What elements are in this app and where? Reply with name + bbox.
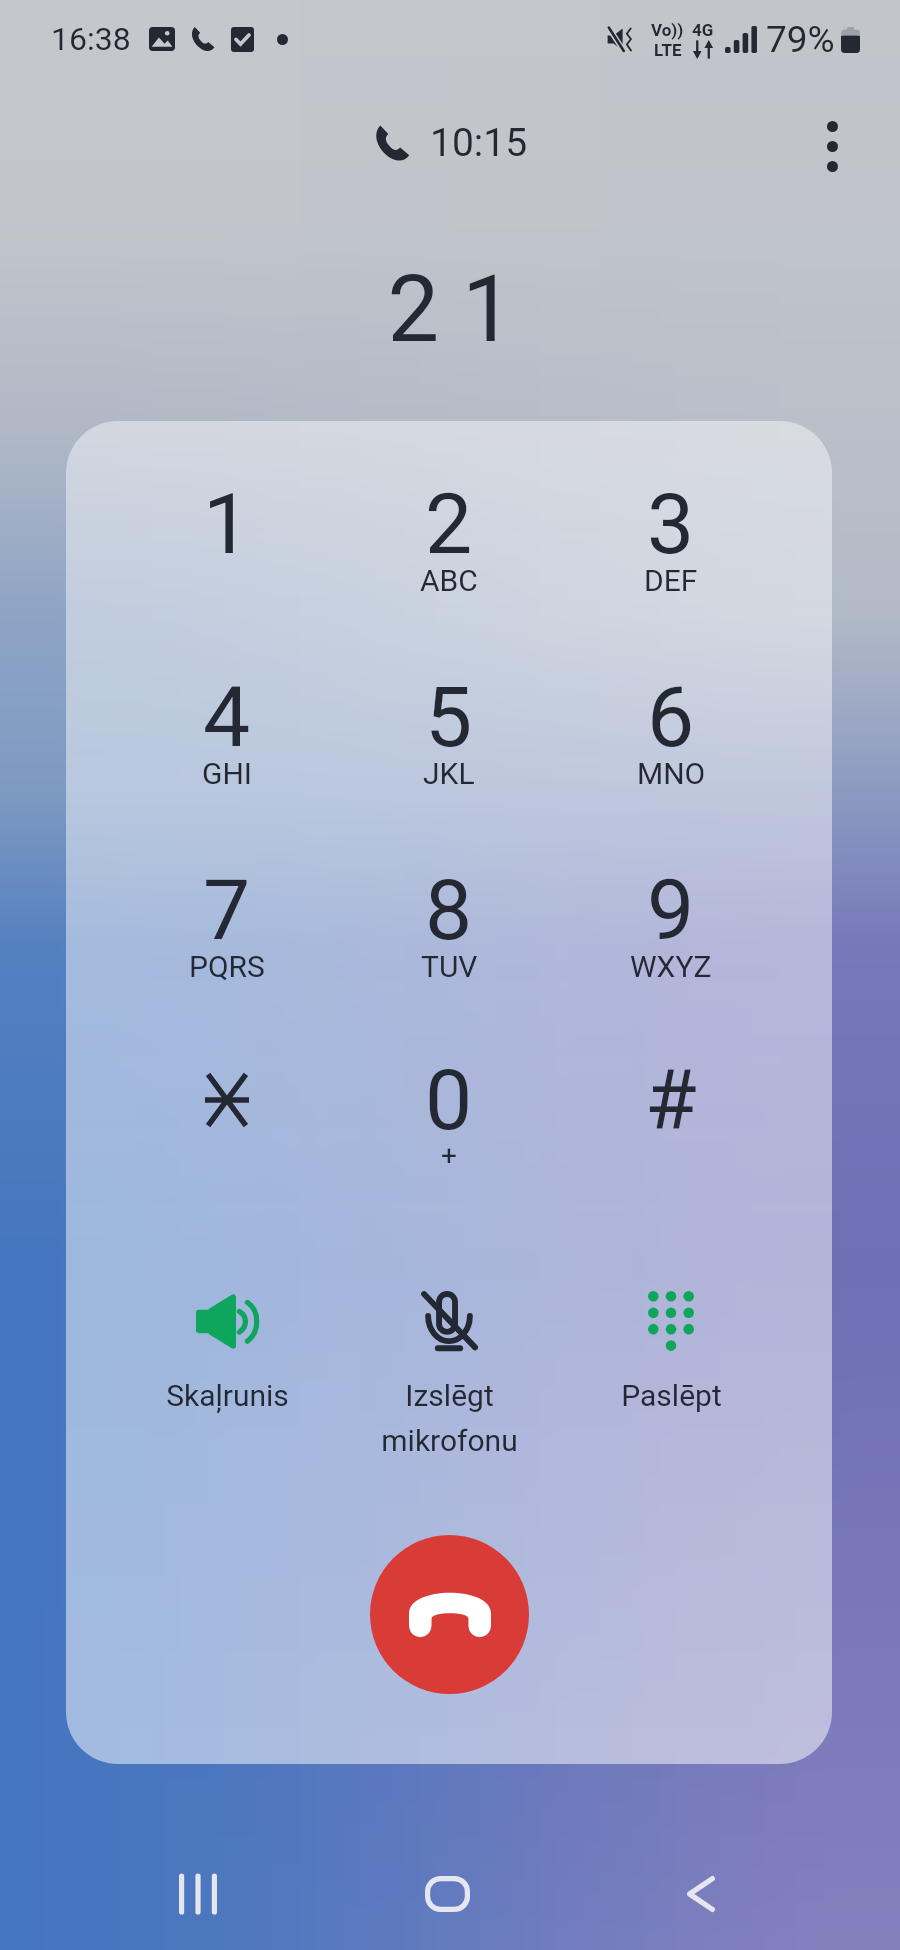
button[interactable]: Skaļrunis bbox=[116, 1266, 338, 1516]
staticText: 6 bbox=[647, 668, 695, 758]
staticText: 3 bbox=[647, 475, 695, 565]
staticText: # bbox=[645, 1051, 697, 1141]
button[interactable]: Recents bbox=[113, 1834, 283, 1950]
staticText: 9 bbox=[647, 861, 695, 951]
button[interactable]: More options bbox=[796, 110, 868, 182]
button[interactable]: Home bbox=[362, 1834, 532, 1950]
staticText: 4G bbox=[692, 20, 714, 40]
staticText: 8 bbox=[425, 861, 473, 951]
staticText: WXYZ bbox=[630, 949, 712, 984]
button[interactable]: Paslēpt bbox=[560, 1266, 782, 1516]
staticText: 79% bbox=[766, 18, 835, 61]
staticText: 16:38 bbox=[51, 20, 131, 58]
staticText: MNO bbox=[637, 756, 706, 791]
staticText: TUV bbox=[421, 949, 478, 984]
staticText: 2 bbox=[425, 475, 473, 565]
staticText: 7 bbox=[203, 861, 251, 951]
button[interactable]: Back bbox=[616, 1834, 786, 1950]
staticText: LTE bbox=[654, 40, 682, 60]
staticText: 4 bbox=[203, 668, 251, 758]
button[interactable]: Izslēgt mikrofonu bbox=[338, 1266, 560, 1516]
staticText: GHI bbox=[202, 756, 252, 791]
button[interactable]: 3 bbox=[560, 475, 782, 627]
staticText: 1 bbox=[203, 475, 251, 565]
staticText: ABC bbox=[420, 563, 478, 598]
staticText: Skaļrunis bbox=[166, 1378, 289, 1413]
button[interactable]: # bbox=[560, 1051, 782, 1203]
staticText: PQRS bbox=[189, 949, 265, 984]
button[interactable] bbox=[116, 1051, 338, 1203]
button[interactable]: 6 bbox=[560, 668, 782, 820]
staticText: Vo)) bbox=[651, 20, 684, 40]
staticText: Izslēgt mikrofonu bbox=[381, 1378, 518, 1458]
staticText: 0 bbox=[425, 1051, 473, 1141]
staticText: DEF bbox=[644, 563, 698, 598]
staticText: JKL bbox=[423, 756, 475, 791]
button[interactable]: 2 bbox=[338, 475, 560, 627]
button[interactable]: 8 bbox=[338, 861, 560, 1013]
staticText: + bbox=[441, 1139, 457, 1172]
staticText: 5 bbox=[425, 668, 473, 758]
button[interactable]: 7 bbox=[116, 861, 338, 1013]
button[interactable]: 1 bbox=[116, 475, 338, 627]
staticText: 10:15 bbox=[430, 120, 528, 166]
staticText: 2 1 bbox=[387, 256, 514, 364]
button[interactable]: 5 bbox=[338, 668, 560, 820]
button[interactable]: 9 bbox=[560, 861, 782, 1013]
staticText: Paslēpt bbox=[621, 1378, 722, 1413]
button[interactable]: 0 bbox=[338, 1051, 560, 1203]
button[interactable]: End call bbox=[370, 1535, 529, 1694]
button[interactable]: 4 bbox=[116, 668, 338, 820]
